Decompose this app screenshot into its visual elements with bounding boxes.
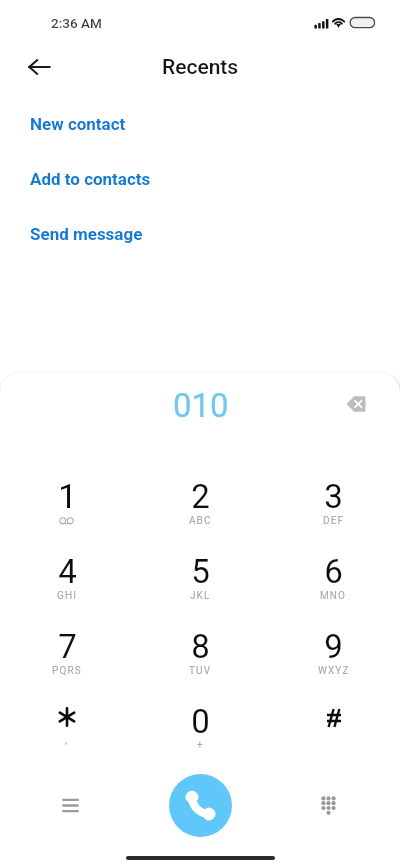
staticText: 0 <box>191 702 210 741</box>
button[interactable]: 2 <box>134 464 267 539</box>
staticText: 7 <box>58 627 77 666</box>
staticText: GHI <box>57 590 77 602</box>
staticText: JKL <box>190 590 211 602</box>
button[interactable]: 7 <box>0 614 134 689</box>
staticText: , <box>65 734 69 746</box>
button[interactable]: Pound <box>267 689 400 764</box>
staticText: MNO <box>320 590 347 602</box>
staticText: 1 <box>58 477 77 516</box>
button[interactable]: 0 <box>134 689 267 764</box>
staticText: TUV <box>189 665 212 677</box>
button[interactable]: Dialpad <box>311 788 346 823</box>
staticText: New contact <box>30 114 126 134</box>
staticText: + <box>197 739 204 751</box>
staticText: DEF <box>323 515 345 527</box>
button[interactable]: Menu <box>53 788 88 823</box>
staticText: Recents <box>162 55 239 80</box>
button[interactable]: Call <box>169 774 232 837</box>
button[interactable]: Add to contacts <box>0 169 400 224</box>
staticText: 8 <box>191 627 210 666</box>
staticText: WXYZ <box>318 665 350 677</box>
button[interactable]: 3 <box>267 464 400 539</box>
button[interactable]: New contact <box>0 114 400 169</box>
staticText: 010 <box>173 386 229 425</box>
button[interactable]: 5 <box>134 539 267 614</box>
staticText: 6 <box>324 552 343 591</box>
button[interactable]: Backspace <box>334 382 378 426</box>
staticText: PQRS <box>52 665 82 677</box>
button[interactable]: Star <box>0 689 134 764</box>
button[interactable]: Send message <box>0 224 400 279</box>
button[interactable]: 6 <box>267 539 400 614</box>
staticText: 3 <box>324 477 343 516</box>
staticText: ABC <box>189 515 212 527</box>
staticText: Send message <box>30 224 143 244</box>
button[interactable]: 4 <box>0 539 134 614</box>
staticText: Add to contacts <box>30 169 151 189</box>
button[interactable]: Back <box>26 50 60 84</box>
staticText: 9 <box>324 627 343 666</box>
staticText: 4 <box>58 552 77 591</box>
staticText: 5 <box>191 552 210 591</box>
staticText: 2 <box>191 477 210 516</box>
button[interactable]: 8 <box>134 614 267 689</box>
button[interactable]: 9 <box>267 614 400 689</box>
staticText: 2:36 AM <box>51 15 102 31</box>
button[interactable]: 1 <box>0 464 134 539</box>
